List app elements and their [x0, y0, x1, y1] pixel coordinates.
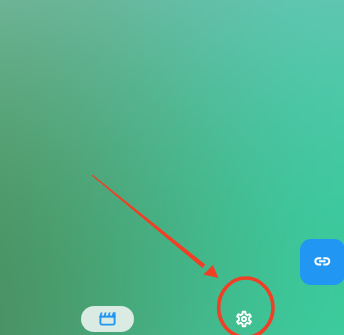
button[interactable]: Copy link — [300, 239, 344, 285]
button[interactable]: Settings — [232, 307, 256, 331]
button[interactable]: Record video — [81, 306, 134, 332]
